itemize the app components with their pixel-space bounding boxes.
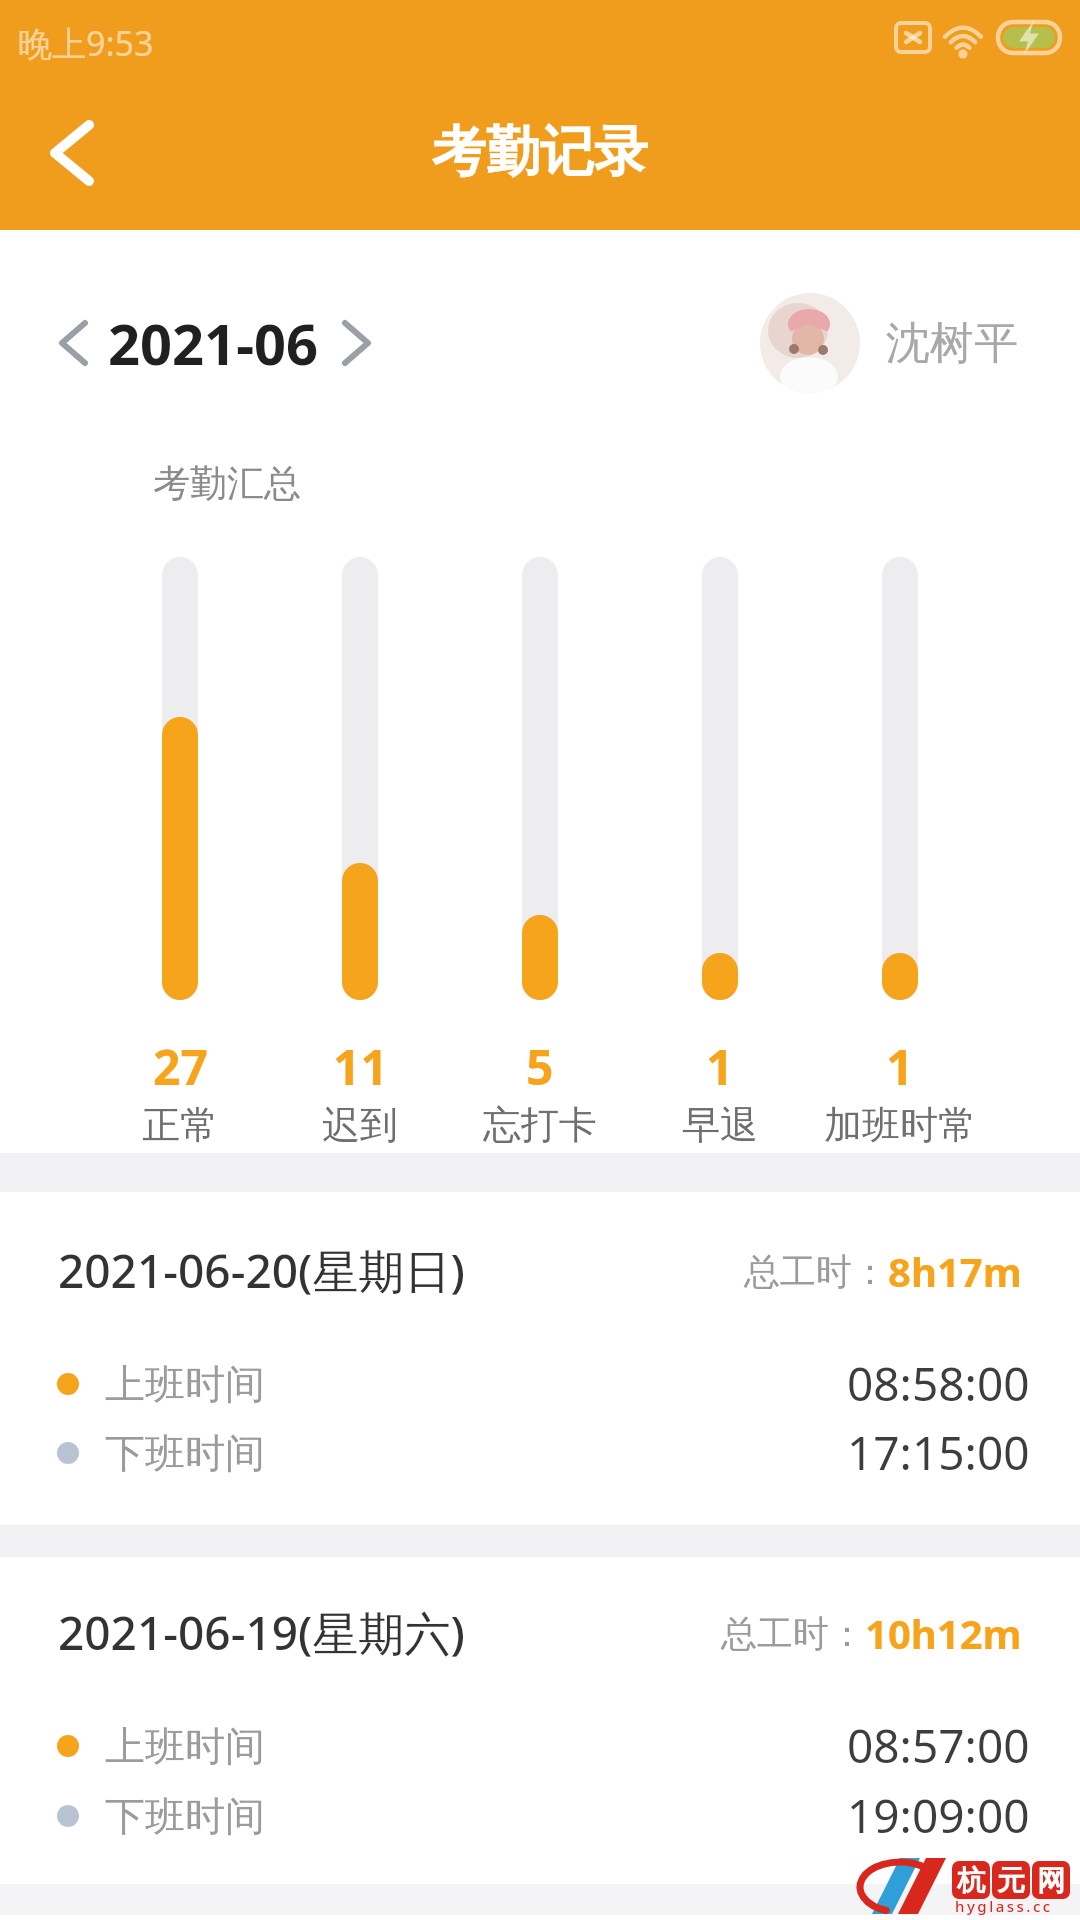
staticText: 总工时： bbox=[744, 1249, 888, 1294]
staticText: 网 bbox=[1037, 1863, 1065, 1898]
staticText: 2021-06-20(星期日) bbox=[58, 1239, 465, 1302]
staticText: 10h12m bbox=[865, 1606, 1022, 1660]
staticText: 5 bbox=[526, 1034, 554, 1099]
staticText: 正常 bbox=[142, 1101, 218, 1149]
staticText: 考勤汇总 bbox=[153, 460, 301, 507]
staticText: hyglass.cc bbox=[955, 1896, 1053, 1916]
staticText: 1 bbox=[886, 1034, 914, 1099]
staticText: 早退 bbox=[682, 1101, 758, 1149]
staticText: 上班时间 bbox=[105, 1359, 265, 1409]
button[interactable]: 下班时间 bbox=[57, 1417, 1030, 1487]
staticText: 考勤记录 bbox=[432, 118, 648, 186]
button[interactable]: 上班时间 bbox=[57, 1710, 1030, 1780]
staticText: 2021-06 bbox=[108, 305, 319, 381]
staticText: 08:58:00 bbox=[847, 1352, 1030, 1415]
staticText: 19:09:00 bbox=[847, 1784, 1030, 1847]
staticText: 1 bbox=[706, 1034, 734, 1099]
staticText: 忘打卡 bbox=[483, 1101, 597, 1149]
staticText: 27 bbox=[153, 1034, 208, 1099]
staticText: 元 bbox=[997, 1863, 1025, 1898]
button[interactable]: 2021-06-20(星期日) bbox=[58, 1235, 1022, 1305]
staticText: 下班时间 bbox=[105, 1791, 265, 1841]
staticText: 17:15:00 bbox=[847, 1421, 1030, 1484]
button[interactable] bbox=[760, 293, 860, 393]
staticText: 总工时： bbox=[721, 1611, 865, 1656]
staticText: 杭 bbox=[957, 1863, 985, 1898]
staticText: 上班时间 bbox=[105, 1721, 265, 1771]
button[interactable] bbox=[22, 105, 117, 200]
staticText: 下班时间 bbox=[105, 1428, 265, 1478]
staticText: 08:57:00 bbox=[847, 1714, 1030, 1777]
button[interactable] bbox=[334, 300, 382, 386]
staticText: 8h17m bbox=[888, 1244, 1022, 1298]
staticText: 迟到 bbox=[322, 1101, 398, 1149]
button[interactable]: 上班时间 bbox=[57, 1348, 1030, 1418]
button[interactable] bbox=[48, 300, 96, 386]
button[interactable]: 2021-06-19(星期六) bbox=[58, 1597, 1022, 1667]
staticText: 晚上9:53 bbox=[18, 20, 154, 66]
button[interactable]: 下班时间 bbox=[57, 1780, 1030, 1850]
staticText: 沈树平 bbox=[886, 316, 1018, 371]
staticText: 11 bbox=[333, 1034, 388, 1099]
staticText: 加班时常 bbox=[824, 1101, 976, 1149]
staticText: 2021-06-19(星期六) bbox=[58, 1601, 465, 1664]
